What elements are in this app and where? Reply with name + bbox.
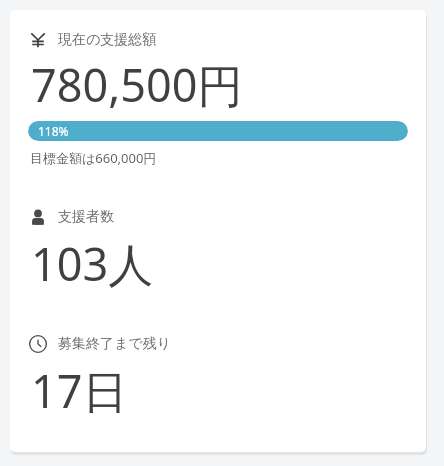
other: Time remaining — [28, 334, 48, 354]
staticText: 17日 — [31, 360, 128, 421]
staticText: 現在の支援総額 — [58, 31, 157, 49]
staticText: 支援者数 — [58, 208, 114, 226]
staticText: 118% — [38, 123, 69, 139]
staticText: 募集終了まで残り — [58, 335, 171, 353]
other: Yen — [28, 30, 48, 50]
other: Backers — [28, 207, 48, 227]
staticText: 780,500円 — [31, 54, 243, 115]
staticText: 目標金額は660,000円 — [30, 149, 157, 167]
button[interactable]: Yen — [10, 10, 426, 452]
staticText: 103人 — [31, 233, 154, 294]
